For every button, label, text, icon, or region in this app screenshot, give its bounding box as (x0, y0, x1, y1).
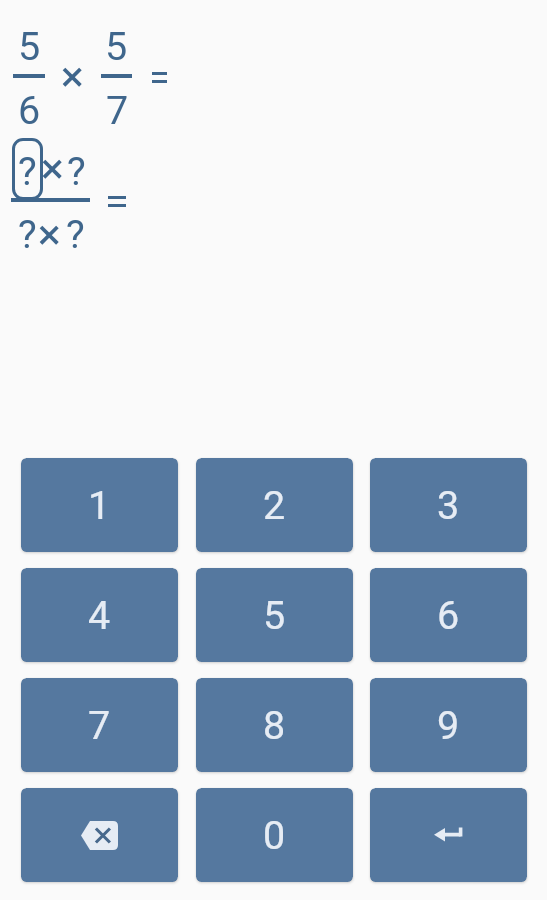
staticText: 5 (18, 23, 41, 69)
staticText: 4 (88, 592, 111, 638)
staticText: 9 (437, 702, 460, 748)
staticText: ? (18, 211, 37, 257)
button[interactable]: 8 (196, 678, 353, 772)
staticText: 2 (263, 482, 286, 528)
staticText: 3 (437, 482, 460, 528)
button[interactable]: 6 (370, 568, 527, 662)
staticText: 7 (88, 702, 111, 748)
button[interactable]: 7 (21, 678, 178, 772)
button[interactable]: 9 (370, 678, 527, 772)
staticText: 5 (263, 592, 286, 638)
staticText: ? (18, 148, 37, 194)
staticText: 6 (18, 87, 41, 133)
button[interactable]: 1 (21, 458, 178, 552)
staticText: 5 (105, 23, 128, 69)
staticText: 7 (106, 87, 129, 133)
button[interactable] (21, 788, 178, 882)
staticText: 0 (263, 812, 286, 858)
staticText: ? (66, 211, 85, 257)
staticText: 6 (437, 592, 460, 638)
staticText: 8 (263, 702, 286, 748)
button[interactable] (370, 788, 527, 882)
button[interactable]: 4 (21, 568, 178, 662)
button[interactable]: 0 (196, 788, 353, 882)
button[interactable]: 5 (196, 568, 353, 662)
button[interactable]: 3 (370, 458, 527, 552)
staticText: 1 (88, 482, 111, 528)
staticText: ? (67, 148, 86, 194)
button[interactable]: 2 (196, 458, 353, 552)
